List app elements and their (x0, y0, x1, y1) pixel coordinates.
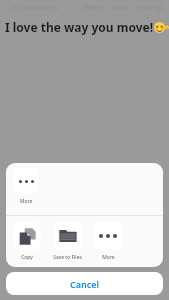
button[interactable]: More (94, 222, 122, 261)
staticText: Delete (83, 3, 105, 13)
staticText: MyGoodNotes (11, 3, 59, 13)
button[interactable]: Cancel (6, 272, 163, 295)
staticText: More (102, 254, 115, 261)
button[interactable]: More (13, 168, 39, 205)
staticText: Settings (136, 3, 163, 13)
staticText: More (20, 198, 33, 205)
staticText: Cancel (70, 278, 100, 290)
staticText: Share (111, 3, 130, 13)
button[interactable]: Save to Files (53, 222, 82, 261)
staticText: Save to Files (53, 254, 82, 261)
button[interactable]: Copy (13, 222, 41, 261)
staticText: I love the way you move! (5, 19, 154, 35)
staticText: Copy (21, 254, 33, 261)
